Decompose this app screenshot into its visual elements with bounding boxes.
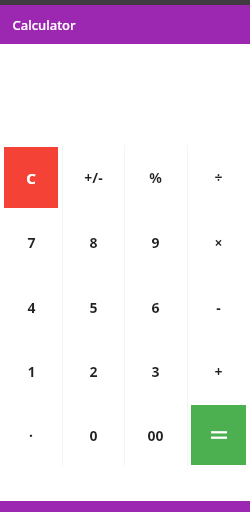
button[interactable]: 9 [124, 210, 187, 275]
button[interactable]: 7 [0, 210, 62, 275]
staticText: 3 [151, 362, 160, 381]
staticText: 4 [27, 298, 36, 317]
staticText: 2 [89, 362, 98, 381]
staticText: 5 [89, 298, 98, 317]
button[interactable]: 3 [124, 339, 187, 403]
button[interactable]: 8 [62, 210, 124, 275]
button[interactable]: · [0, 403, 62, 467]
button[interactable]: 00 [124, 403, 187, 467]
staticText: 9 [151, 233, 160, 252]
button[interactable]: + [187, 339, 250, 403]
staticText: 0 [89, 426, 98, 445]
button[interactable]: 5 [62, 275, 124, 339]
button[interactable]: 1 [0, 339, 62, 403]
staticText: ÷ [214, 168, 223, 187]
staticText: Calculator [12, 16, 76, 34]
staticText: · [29, 426, 33, 445]
button[interactable]: 4 [0, 275, 62, 339]
staticText: % [149, 168, 162, 187]
button[interactable]: - [187, 275, 250, 339]
staticText: +/- [84, 168, 103, 187]
button[interactable]: ÷ [187, 145, 250, 210]
button[interactable]: % [124, 145, 187, 210]
staticText: 6 [151, 298, 160, 317]
staticText: C [26, 168, 36, 188]
button[interactable]: 6 [124, 275, 187, 339]
button[interactable]: 2 [62, 339, 124, 403]
button[interactable]: × [187, 210, 250, 275]
staticText: - [216, 298, 221, 317]
staticText: 8 [89, 233, 98, 252]
button[interactable]: Equals [187, 403, 250, 467]
staticText: × [214, 233, 223, 252]
button[interactable]: C [0, 145, 62, 210]
staticText: 00 [147, 426, 164, 445]
staticText: + [214, 362, 223, 381]
button[interactable]: +/- [62, 145, 124, 210]
staticText: 7 [27, 233, 36, 252]
button[interactable]: 0 [62, 403, 124, 467]
staticText: 1 [27, 362, 36, 381]
